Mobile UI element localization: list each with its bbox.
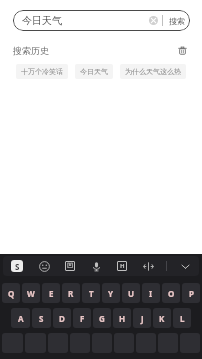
- button[interactable]: Hide keyboard: [177, 258, 193, 274]
- button[interactable]: Q: [2, 283, 20, 303]
- staticText: E: [49, 288, 54, 299]
- button[interactable]: R: [62, 283, 80, 303]
- button[interactable]: K: [153, 308, 171, 328]
- staticText: 搜索: [169, 16, 185, 26]
- button[interactable]: O: [162, 283, 180, 303]
- button[interactable]: Clear: [145, 12, 162, 29]
- staticText: W: [27, 288, 35, 299]
- button[interactable]: Keyboard layout: [62, 258, 78, 274]
- staticText: P: [189, 288, 194, 299]
- button[interactable]: P: [182, 283, 200, 303]
- button[interactable]: F: [73, 308, 91, 328]
- button[interactable]: 搜索: [163, 16, 190, 26]
- staticText: Y: [108, 288, 114, 299]
- button[interactable]: A: [11, 308, 30, 328]
- button[interactable]: Handwriting: [114, 258, 130, 274]
- button[interactable]: Y: [102, 283, 120, 303]
- staticText: 十万个冷笑话: [21, 67, 63, 76]
- staticText: H: [119, 313, 126, 324]
- button[interactable]: 今日天气: [13, 10, 190, 31]
- button[interactable]: 为什么天气这么热: [120, 64, 186, 79]
- staticText: J: [141, 313, 144, 324]
- button[interactable]: Adjust: [140, 258, 156, 274]
- staticText: U: [128, 288, 135, 299]
- button[interactable]: Sogou: [9, 258, 25, 274]
- button[interactable]: Voice input: [88, 258, 104, 274]
- button[interactable]: Emoji: [36, 258, 52, 274]
- button[interactable]: E: [42, 283, 60, 303]
- staticText: O: [168, 288, 175, 299]
- staticText: S: [15, 261, 20, 272]
- staticText: R: [68, 288, 74, 299]
- button[interactable]: S: [32, 308, 51, 328]
- staticText: K: [159, 313, 165, 324]
- staticText: D: [59, 313, 65, 324]
- button[interactable]: Clear history: [175, 43, 189, 57]
- staticText: G: [99, 313, 105, 324]
- staticText: 今日天气: [22, 14, 62, 27]
- staticText: 今日天气: [80, 67, 108, 76]
- staticText: 搜索历史: [13, 45, 49, 56]
- button[interactable]: 十万个冷笑话: [16, 64, 68, 79]
- button[interactable]: H: [113, 308, 131, 328]
- staticText: H: [120, 262, 125, 270]
- button[interactable]: U: [122, 283, 140, 303]
- button[interactable]: 今日天气: [75, 64, 113, 79]
- staticText: 为什么天气这么热: [125, 67, 181, 76]
- staticText: L: [180, 313, 185, 324]
- button[interactable]: G: [93, 308, 111, 328]
- button[interactable]: J: [133, 308, 151, 328]
- button[interactable]: D: [53, 308, 71, 328]
- staticText: S: [39, 313, 44, 324]
- button[interactable]: I: [142, 283, 160, 303]
- staticText: A: [18, 313, 24, 324]
- button[interactable]: T: [82, 283, 100, 303]
- staticText: T: [89, 288, 94, 299]
- staticText: 凹: [67, 262, 73, 270]
- staticText: F: [80, 313, 85, 324]
- staticText: Q: [8, 288, 15, 299]
- staticText: I: [149, 288, 153, 299]
- button[interactable]: L: [173, 308, 191, 328]
- button[interactable]: W: [22, 283, 40, 303]
